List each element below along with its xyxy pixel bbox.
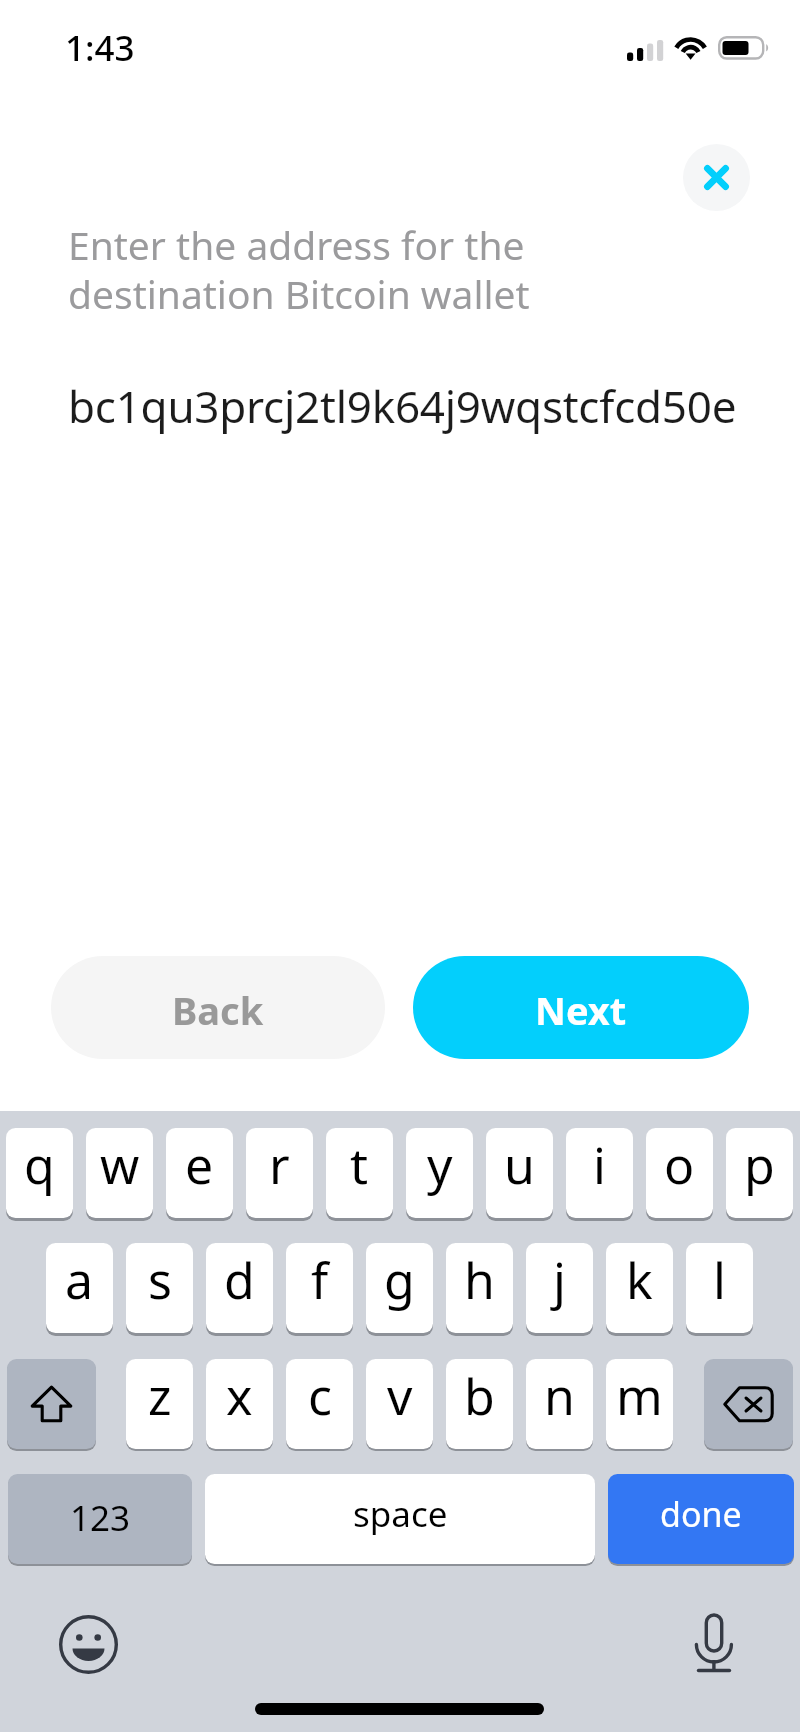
button[interactable]: r: [246, 1128, 313, 1218]
button[interactable]: b: [446, 1359, 513, 1449]
button[interactable]: k: [606, 1243, 673, 1333]
staticText: h: [464, 1246, 495, 1314]
staticText: t: [350, 1131, 369, 1199]
button[interactable]: f: [286, 1243, 353, 1333]
staticText: done: [660, 1491, 742, 1537]
button[interactable]: 123: [8, 1474, 192, 1564]
staticText: x: [226, 1362, 253, 1430]
staticText: 123: [70, 1494, 131, 1542]
button[interactable]: v: [366, 1359, 433, 1449]
button[interactable]: Back: [51, 956, 385, 1059]
button[interactable]: Emoji: [58, 1614, 119, 1675]
button[interactable]: Next: [413, 956, 749, 1059]
button[interactable]: c: [286, 1359, 353, 1449]
button[interactable]: p: [726, 1128, 793, 1218]
button[interactable]: s: [126, 1243, 193, 1333]
button[interactable]: o: [646, 1128, 713, 1218]
button[interactable]: i: [566, 1128, 633, 1218]
staticText: 1:43: [65, 24, 135, 72]
button[interactable]: h: [446, 1243, 513, 1333]
staticText: w: [100, 1131, 140, 1199]
staticText: s: [148, 1246, 172, 1314]
button[interactable]: space: [205, 1474, 595, 1564]
button[interactable]: d: [206, 1243, 273, 1333]
staticText: bc1qu3prcj2tl9k64j9wqstcfcd50e: [68, 376, 737, 436]
button[interactable]: x: [206, 1359, 273, 1449]
staticText: Next: [535, 984, 627, 1036]
button[interactable]: a: [46, 1243, 113, 1333]
staticText: z: [148, 1362, 172, 1430]
staticText: l: [713, 1246, 726, 1314]
staticText: j: [553, 1246, 566, 1314]
staticText: v: [387, 1362, 413, 1430]
button[interactable]: g: [366, 1243, 433, 1333]
staticText: Enter the address for the destination Bi…: [68, 218, 530, 321]
button[interactable]: j: [526, 1243, 593, 1333]
button[interactable]: q: [6, 1128, 73, 1218]
button[interactable]: done: [608, 1474, 794, 1564]
button[interactable]: t: [326, 1128, 393, 1218]
staticText: o: [664, 1131, 695, 1199]
button[interactable]: Close: [683, 144, 750, 211]
staticText: q: [24, 1131, 55, 1199]
staticText: f: [311, 1246, 329, 1314]
button[interactable]: w: [86, 1128, 153, 1218]
button[interactable]: z: [126, 1359, 193, 1449]
button[interactable]: e: [166, 1128, 233, 1218]
staticText: y: [427, 1131, 453, 1199]
staticText: b: [464, 1362, 495, 1430]
button[interactable]: Backspace: [704, 1359, 793, 1449]
button[interactable]: Shift: [7, 1359, 96, 1449]
staticText: g: [384, 1246, 415, 1314]
staticText: m: [616, 1362, 663, 1430]
staticText: Back: [172, 984, 264, 1036]
staticText: space: [353, 1490, 448, 1538]
button[interactable]: m: [606, 1359, 673, 1449]
button[interactable]: y: [406, 1128, 473, 1218]
staticText: a: [65, 1246, 94, 1314]
staticText: d: [224, 1246, 255, 1314]
button[interactable]: Dictate: [693, 1613, 734, 1675]
button[interactable]: l: [686, 1243, 753, 1333]
staticText: i: [593, 1131, 606, 1199]
staticText: n: [544, 1362, 575, 1430]
staticText: k: [626, 1246, 653, 1314]
staticText: e: [185, 1131, 214, 1199]
staticText: r: [269, 1131, 290, 1199]
button[interactable]: u: [486, 1128, 553, 1218]
staticText: p: [744, 1131, 775, 1199]
staticText: c: [308, 1362, 332, 1430]
button[interactable]: n: [526, 1359, 593, 1449]
staticText: u: [504, 1131, 535, 1199]
